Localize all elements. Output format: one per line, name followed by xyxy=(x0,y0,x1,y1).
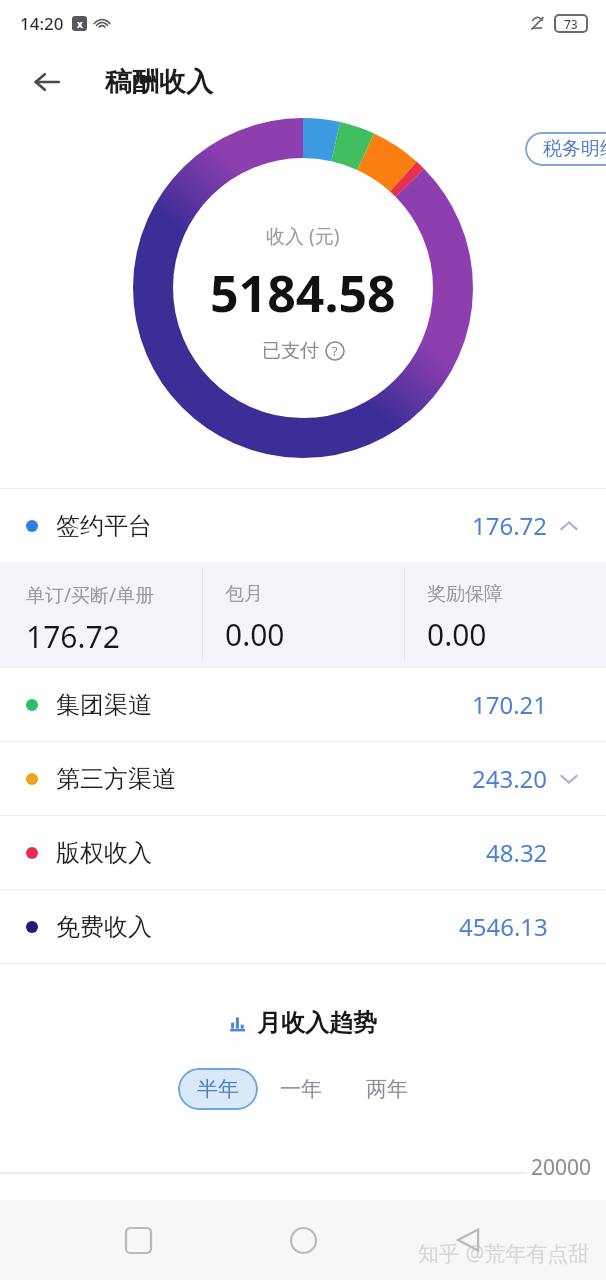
staticText: 奖励保障 xyxy=(427,582,503,606)
staticText: 签约平台 xyxy=(56,511,152,541)
staticText: 73 xyxy=(564,16,578,32)
button[interactable]: 第三方渠道 xyxy=(0,742,606,815)
staticText: 一年 xyxy=(280,1076,322,1102)
staticText: 已支付 xyxy=(262,339,319,363)
staticText: 4546.13 xyxy=(459,910,548,943)
button[interactable]: 免费收入 xyxy=(0,890,606,963)
button[interactable]: Back xyxy=(441,1212,497,1268)
staticText: 收入 (元) xyxy=(266,223,340,249)
staticText: 月收入趋势 xyxy=(257,1008,377,1038)
button[interactable]: 税务明细 xyxy=(525,132,606,166)
staticText: 第三方渠道 xyxy=(56,764,176,794)
button[interactable]: 两年 xyxy=(344,1068,430,1110)
button[interactable]: 单订/买断/单册 xyxy=(0,562,202,667)
staticText: 20000 xyxy=(531,1153,592,1182)
button[interactable]: 版权收入 xyxy=(0,816,606,889)
button[interactable]: Home xyxy=(275,1212,331,1268)
staticText: 243.20 xyxy=(472,762,548,795)
staticText: 两年 xyxy=(366,1076,408,1102)
button[interactable]: Recent apps xyxy=(110,1212,166,1268)
staticText: 0.00 xyxy=(225,614,285,655)
staticText: 176.72 xyxy=(472,509,548,542)
staticText: 0.00 xyxy=(427,614,487,655)
staticText: 稿酬收入 xyxy=(105,65,213,99)
staticText: 14:20 xyxy=(20,12,64,35)
staticText: 5184.58 xyxy=(210,259,396,327)
staticText: ? xyxy=(332,342,338,360)
button[interactable]: Help xyxy=(325,341,345,361)
button[interactable]: 集团渠道 xyxy=(0,668,606,741)
button[interactable]: Back xyxy=(22,57,72,107)
staticText: 税务明细 xyxy=(543,137,606,161)
staticText: 集团渠道 xyxy=(56,690,152,720)
staticText: 半年 xyxy=(197,1076,239,1102)
staticText: 176.72 xyxy=(26,616,120,657)
staticText: 48.32 xyxy=(486,836,548,869)
button[interactable]: 奖励保障 xyxy=(405,562,606,667)
staticText: 170.21 xyxy=(472,688,548,721)
button[interactable]: 包月 xyxy=(203,562,404,667)
button[interactable]: 一年 xyxy=(258,1068,344,1110)
button[interactable]: 半年 xyxy=(178,1068,258,1110)
staticText: 单订/买断/单册 xyxy=(26,582,155,608)
staticText: 知乎 @荒年有点甜 xyxy=(418,1239,590,1268)
staticText: 免费收入 xyxy=(56,912,152,942)
staticText: 版权收入 xyxy=(56,838,152,868)
button[interactable]: 签约平台 xyxy=(0,489,606,562)
staticText: 包月 xyxy=(225,582,263,606)
staticText: x xyxy=(77,17,83,31)
